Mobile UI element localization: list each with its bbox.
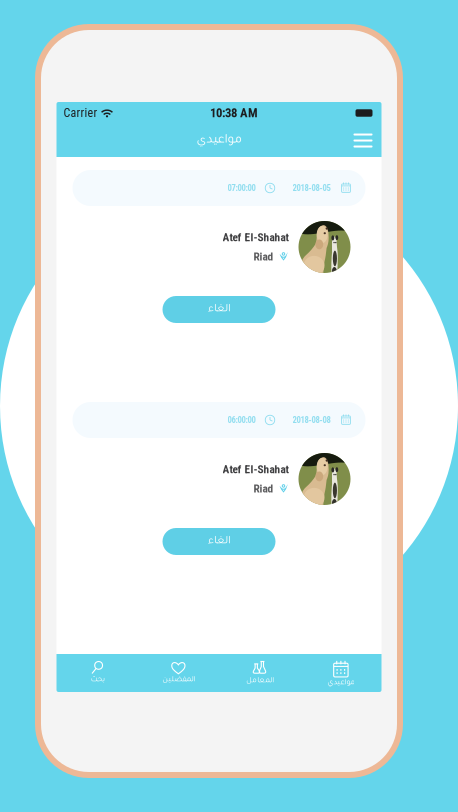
- staticText: Carrier: [63, 106, 97, 120]
- staticText: مواعيدي: [327, 679, 355, 687]
- button[interactable]: المفضلين: [138, 654, 219, 692]
- button[interactable]: مواعيدي: [300, 654, 381, 692]
- staticText: مواعيدي: [196, 134, 242, 147]
- staticText: Riad: [253, 250, 273, 263]
- staticText: 07:00:00: [227, 183, 255, 193]
- button[interactable]: المعامل: [219, 654, 300, 692]
- staticText: الغاء: [207, 536, 230, 547]
- staticText: 2018-08-08: [292, 415, 330, 425]
- staticText: بحث: [90, 676, 104, 684]
- staticText: 10:38 AM: [210, 106, 258, 120]
- staticText: المعامل: [246, 677, 274, 685]
- staticText: Atef El-Shahat: [222, 463, 288, 476]
- staticText: الغاء: [207, 304, 230, 315]
- staticText: Riad: [253, 482, 273, 495]
- staticText: 2018-08-05: [292, 183, 330, 193]
- button[interactable]: Menu: [345, 124, 380, 157]
- button[interactable]: الغاء: [162, 296, 275, 323]
- button[interactable]: الغاء: [162, 528, 275, 555]
- staticText: Atef El-Shahat: [222, 231, 288, 244]
- button[interactable]: بحث: [56, 654, 138, 692]
- staticText: 06:00:00: [227, 415, 255, 425]
- staticText: المفضلين: [162, 676, 195, 684]
